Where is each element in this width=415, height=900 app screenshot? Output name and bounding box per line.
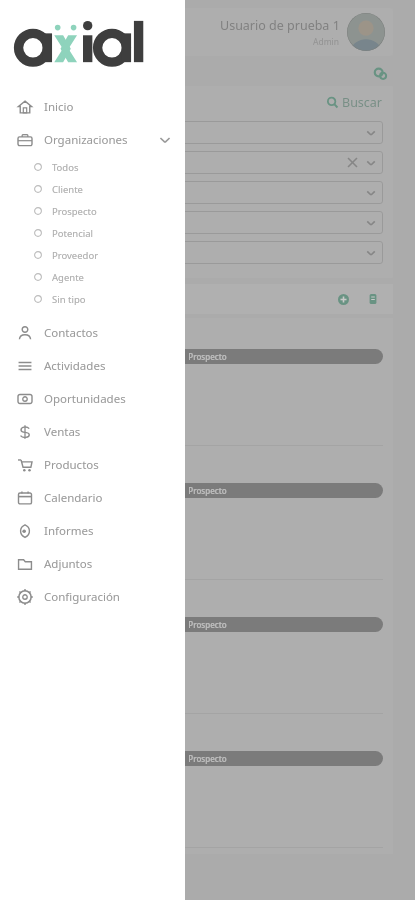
button[interactable]: Configuración: [369, 62, 391, 84]
staticText: Oportunidades: [44, 391, 126, 407]
button[interactable]: Exportar: [363, 289, 383, 309]
staticText: Agente: [52, 271, 84, 284]
staticText: Inicio: [44, 99, 74, 115]
button[interactable]: [32, 181, 383, 204]
button[interactable]: Prospecto: [32, 751, 383, 766]
staticText: Prospecto: [188, 485, 227, 496]
staticText: Actividades: [44, 358, 106, 374]
staticText: Studio Mask: [32, 461, 101, 477]
staticText: Sin tipo: [52, 293, 86, 306]
button[interactable]: Prospecto: [0, 200, 185, 222]
button[interactable]: Prospecto: [32, 349, 383, 364]
button[interactable]: Potencial: [0, 222, 185, 244]
button[interactable]: [32, 121, 383, 144]
button[interactable]: Informes: [0, 514, 185, 547]
button[interactable]: Miche Asesores: [22, 586, 393, 720]
button[interactable]: Productos: [0, 448, 185, 481]
button[interactable]: Organizaciones: [0, 123, 185, 156]
button[interactable]: Eliminar: [62, 419, 86, 443]
staticText: Prospecto: [188, 753, 227, 764]
button[interactable]: Prospecto: [32, 617, 383, 632]
staticText: Michel Monserrat: [32, 392, 123, 407]
staticText: Vidal 320 Auditores: [32, 327, 141, 343]
staticText: Informes: [44, 523, 94, 539]
button[interactable]: Contactos: [0, 316, 185, 349]
staticText: Configuración: [44, 589, 120, 605]
staticText: Potencial: [52, 227, 93, 240]
staticText: Todos: [52, 161, 79, 174]
button[interactable]: Studio Mask: [22, 452, 393, 586]
button[interactable]: Proveedor: [0, 244, 185, 266]
button[interactable]: Ventas: [0, 415, 185, 448]
button[interactable]: Metropol Asociados: [22, 720, 393, 854]
staticText: Contactos: [44, 325, 99, 341]
staticText: Añadir: [39, 25, 74, 40]
button[interactable]: Actividades: [0, 349, 185, 382]
staticText: Miche Asesores: [32, 595, 120, 611]
button[interactable]: Inicio: [0, 90, 185, 123]
button[interactable]: [32, 211, 383, 234]
button[interactable]: [347, 13, 385, 51]
button[interactable]: Todos: [0, 156, 185, 178]
button[interactable]: Sin tipo: [0, 288, 185, 310]
button[interactable]: Adjuntos: [0, 547, 185, 580]
staticText: Organizaciones: [44, 132, 159, 148]
staticText: Michel Monserrat: [32, 526, 123, 541]
staticText: Cliente: [52, 183, 83, 196]
staticText: Ventas: [44, 424, 81, 440]
staticText: Prospecto: [188, 619, 227, 630]
button[interactable]: Configuración: [0, 580, 185, 613]
button[interactable]: Buscar: [32, 94, 383, 111]
button[interactable]: Agente: [0, 266, 185, 288]
button[interactable]: Prospecto: [32, 483, 383, 498]
staticText: Buscar: [342, 94, 383, 111]
button[interactable]: Cliente: [0, 178, 185, 200]
staticText: Productos: [44, 457, 99, 473]
button[interactable]: [32, 241, 383, 264]
button[interactable]: Oportunidades: [0, 382, 185, 415]
staticText: Prospecto: [52, 205, 97, 218]
button[interactable]: Vidal 320 Auditores: [22, 318, 393, 452]
button[interactable]: Ver: [32, 553, 56, 577]
button[interactable]: Ver: [32, 419, 56, 443]
staticText: Usuario de prueba 1: [220, 17, 340, 34]
staticText: Prospecto: [188, 351, 227, 362]
button[interactable]: Calendario: [0, 481, 185, 514]
button[interactable]: Añadir registro: [333, 289, 353, 309]
staticText: Adjuntos: [44, 556, 93, 572]
staticText: Proveedor: [52, 249, 99, 262]
button[interactable]: Añadir: [22, 20, 90, 44]
staticText: Calendario: [44, 490, 103, 506]
button[interactable]: Eliminar: [62, 553, 86, 577]
button[interactable]: [32, 151, 383, 174]
staticText: Admin: [313, 36, 340, 48]
